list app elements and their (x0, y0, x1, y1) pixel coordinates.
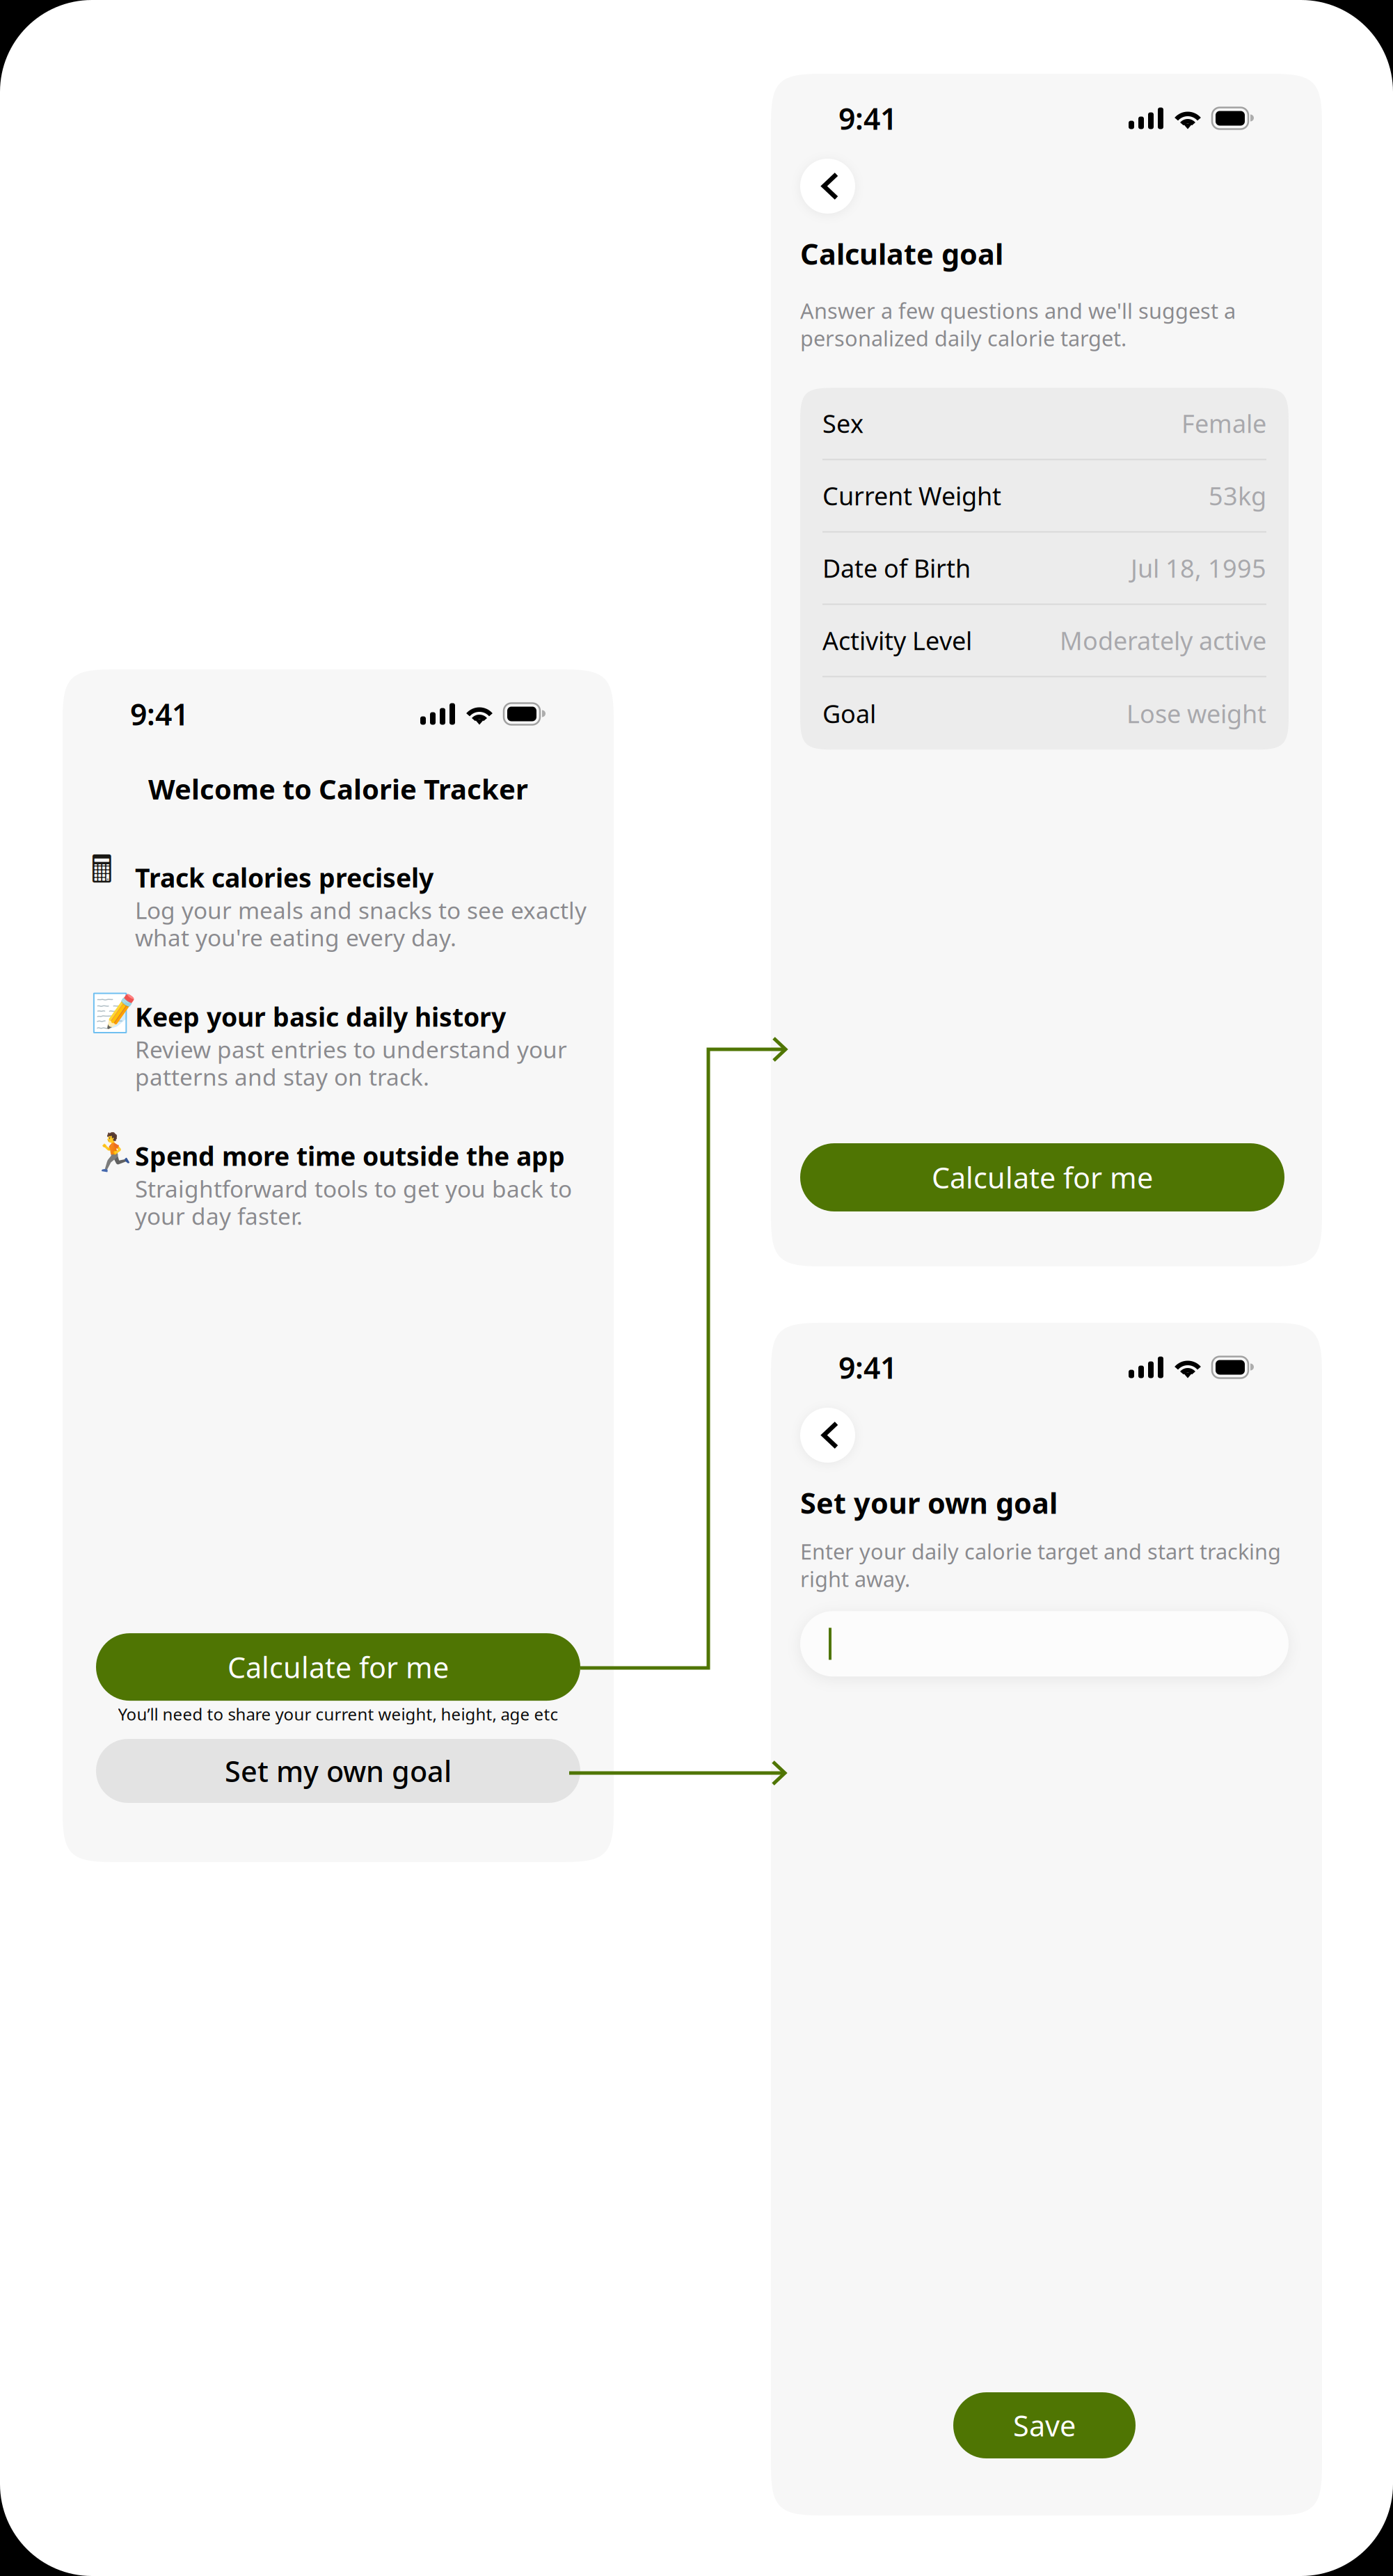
staticText: Log your meals and snacks to see exactly (135, 895, 587, 925)
button[interactable]: Back (800, 159, 855, 214)
staticText: Current Weight (822, 479, 1001, 512)
staticText: 9:41 (838, 99, 897, 138)
staticText: 9:41 (838, 1348, 897, 1387)
staticText: 9:41 (130, 694, 189, 734)
button[interactable]: Back (800, 1408, 855, 1463)
staticText: Lose weight (1127, 697, 1266, 730)
staticText: Track calories precisely (135, 860, 433, 895)
staticText: right away. (800, 1565, 910, 1593)
button[interactable]: Calculate for me (800, 1143, 1284, 1211)
staticText: Set your own goal (800, 1484, 1058, 1522)
staticText: Set my own goal (225, 1752, 452, 1790)
staticText: what you're eating every day. (135, 922, 456, 953)
staticText: Sex (822, 407, 863, 440)
button[interactable]: Save (953, 2392, 1136, 2458)
staticText: Goal (822, 697, 876, 730)
staticText: Keep your basic daily history (135, 999, 506, 1034)
staticText: Activity Level (822, 624, 972, 657)
staticText: Date of Birth (822, 551, 971, 585)
staticText: Answer a few questions and we'll suggest… (800, 296, 1236, 325)
button[interactable]: Calculate for me (96, 1633, 580, 1701)
staticText: Straightforward tools to get you back to (135, 1173, 572, 1204)
button[interactable]: Set my own goal (96, 1739, 580, 1803)
staticText: Calculate for me (932, 1158, 1153, 1196)
staticText: Calculate goal (800, 234, 1003, 273)
staticText: patterns and stay on track. (135, 1061, 429, 1092)
staticText: your day faster. (135, 1200, 303, 1231)
staticText: 📝 (90, 992, 136, 1035)
staticText: Spend more time outside the app (135, 1139, 565, 1173)
staticText: Female (1181, 407, 1266, 440)
staticText: 🖩 (90, 843, 113, 905)
staticText: Moderately active (1060, 624, 1266, 657)
staticText: Enter your daily calorie target and star… (800, 1537, 1281, 1565)
staticText: Review past entries to understand your (135, 1034, 567, 1065)
staticText: 53kg (1209, 479, 1266, 512)
staticText: Calculate for me (228, 1648, 449, 1686)
staticText: Save (1013, 2406, 1076, 2444)
staticText: 🏃 (90, 1131, 136, 1174)
staticText: Welcome to Calorie Tracker (148, 770, 528, 807)
staticText: Jul 18, 1995 (1131, 551, 1266, 585)
staticText: You’ll need to share your current weight… (118, 1703, 558, 1725)
staticText: personalized daily calorie target. (800, 324, 1127, 352)
